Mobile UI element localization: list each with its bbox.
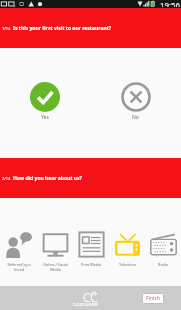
staticText: Online / Social Media xyxy=(43,262,68,272)
button[interactable]: Online / Social Media xyxy=(37,198,73,286)
staticText: Print Media xyxy=(81,262,101,267)
staticText: 19:56 xyxy=(160,0,180,7)
staticText: Is this your first visit to our restaura… xyxy=(13,25,112,32)
staticText: 2/14 xyxy=(2,176,11,181)
button[interactable]: Radio xyxy=(145,198,181,286)
staticText: Radio xyxy=(158,262,168,267)
button[interactable]: Television xyxy=(109,198,145,286)
staticText: CC xyxy=(83,289,98,305)
staticText: CLOUDCHERRY xyxy=(73,302,99,306)
button[interactable]: Finish xyxy=(142,293,164,304)
staticText: No xyxy=(132,114,139,121)
staticText: 1/14 xyxy=(2,26,11,31)
staticText: Finish xyxy=(146,295,160,302)
button[interactable]: Print Media xyxy=(73,198,109,286)
staticText: Television xyxy=(119,262,136,267)
staticText: Referred by a friend xyxy=(7,262,31,272)
staticText: How did you hear about us? xyxy=(13,175,82,182)
staticText: Yes xyxy=(41,114,49,121)
button[interactable]: Referred by a friend xyxy=(0,198,37,286)
button[interactable]: No xyxy=(90,82,181,121)
button[interactable]: Yes xyxy=(0,82,90,121)
